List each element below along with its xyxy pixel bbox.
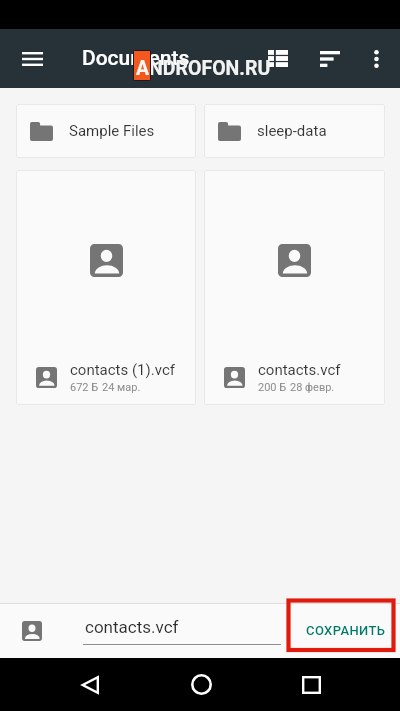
- staticText: 24 мар.: [102, 381, 141, 394]
- button[interactable]: Back: [0, 658, 180, 711]
- button[interactable]: Sample Files: [16, 104, 196, 158]
- staticText: 28 февр.: [290, 381, 335, 394]
- staticText: sleep-data: [257, 122, 327, 140]
- button[interactable]: СОХРАНИТЬ: [285, 603, 400, 658]
- button[interactable]: Open navigation drawer: [0, 29, 64, 88]
- staticText: 200 Б: [258, 381, 287, 394]
- staticText: СОХРАНИТЬ: [306, 623, 386, 638]
- staticText: Sample Files: [69, 122, 155, 140]
- button[interactable]: Recent apps: [222, 658, 400, 711]
- button[interactable]: sleep-data: [204, 104, 385, 158]
- button[interactable]: Sort: [306, 29, 354, 88]
- staticText: 672 Б: [70, 381, 99, 394]
- button[interactable]: More options: [354, 29, 398, 88]
- staticText: ANDROFON.RU: [136, 57, 271, 80]
- button[interactable]: Switch to grid view: [250, 29, 306, 88]
- staticText: contacts.vcf: [85, 617, 179, 637]
- button[interactable]: Home: [180, 658, 222, 711]
- staticText: contacts.vcf: [258, 361, 341, 379]
- staticText: Documents: [82, 46, 190, 71]
- button[interactable]: contacts.vcf: [204, 170, 385, 405]
- staticText: contacts (1).vcf: [70, 361, 175, 379]
- staticText: A: [136, 57, 150, 80]
- button[interactable]: contacts (1).vcf: [16, 170, 196, 405]
